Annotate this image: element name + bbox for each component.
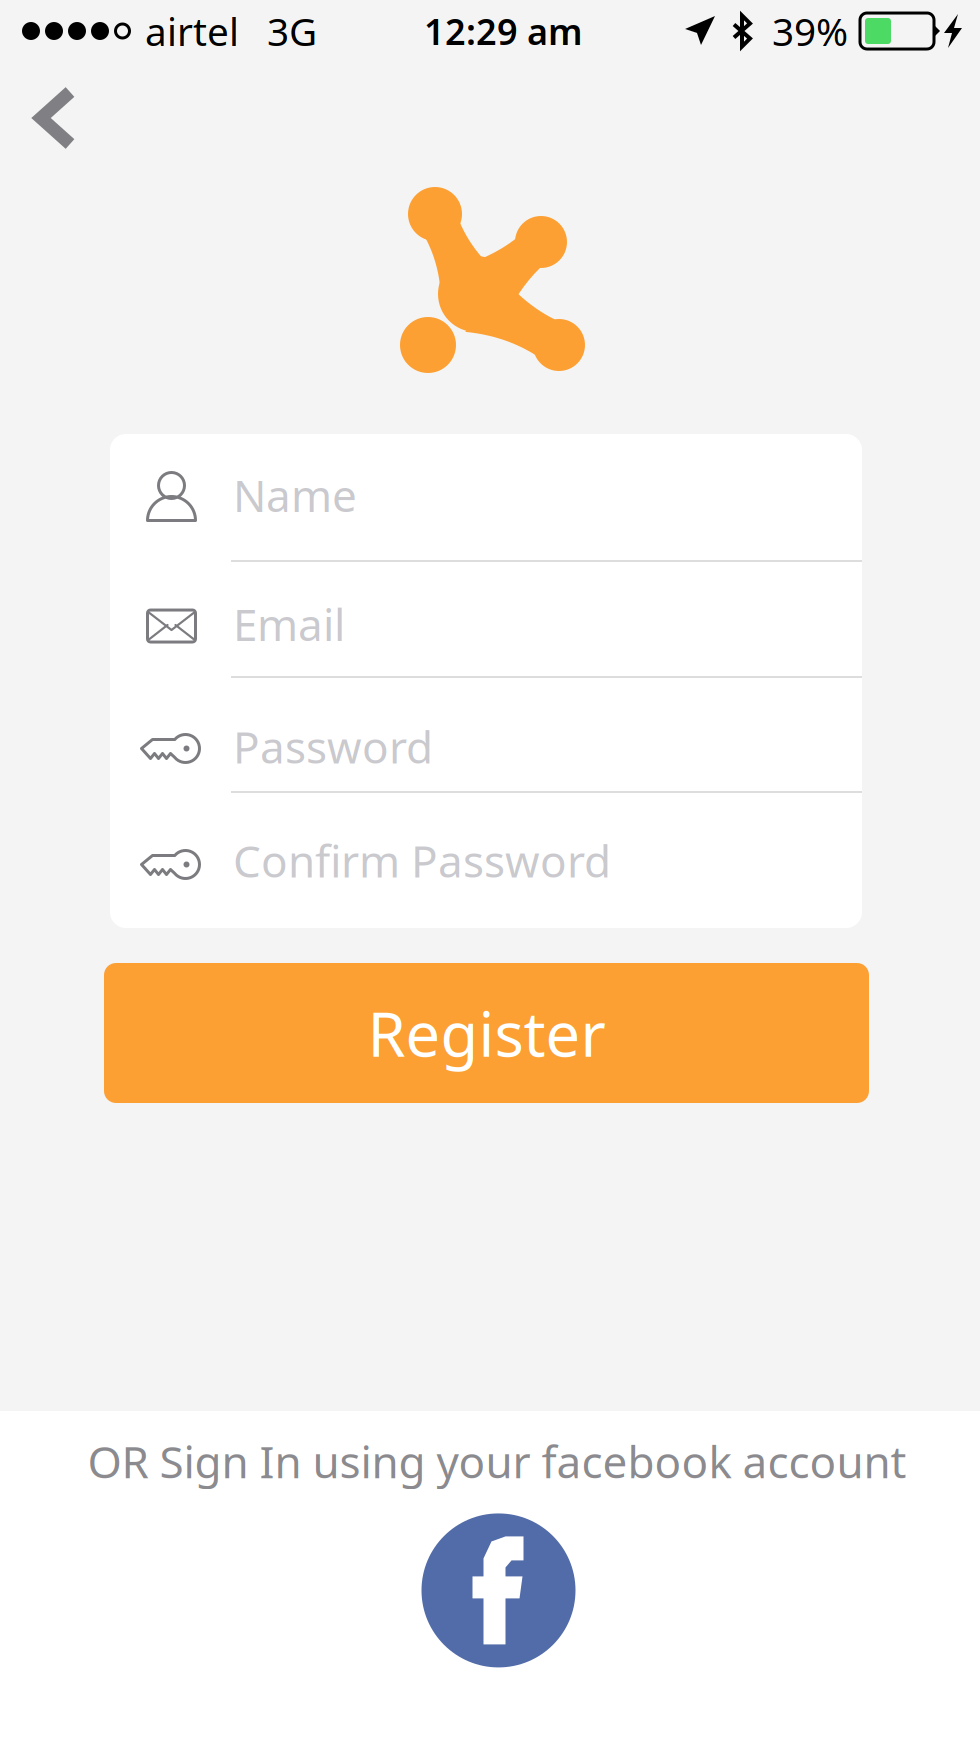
button[interactable]: Register bbox=[104, 963, 869, 1103]
staticText: Password bbox=[233, 717, 433, 776]
staticText: Email bbox=[233, 595, 345, 653]
staticText: Confirm Password bbox=[233, 831, 611, 890]
button[interactable]: Back bbox=[0, 62, 106, 164]
staticText: 3G bbox=[267, 5, 317, 57]
staticText: Register bbox=[367, 992, 605, 1074]
staticText: Name bbox=[233, 466, 357, 524]
staticText: 12:29 am bbox=[424, 7, 583, 55]
staticText: 39% bbox=[772, 5, 848, 57]
staticText: airtel bbox=[145, 5, 239, 57]
staticText: OR Sign In using your facebook account bbox=[87, 1432, 906, 1490]
button[interactable]: Sign in with Facebook bbox=[404, 1490, 575, 1667]
